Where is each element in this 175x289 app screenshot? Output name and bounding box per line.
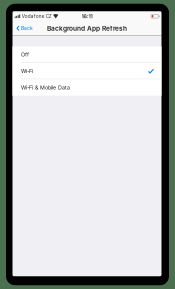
button[interactable]: Back [12, 22, 36, 34]
staticText: Back [21, 25, 33, 31]
staticText: Background App Refresh [47, 24, 127, 32]
button[interactable]: Wi-Fi & Mobile Data [12, 79, 161, 96]
staticText: Off [21, 51, 29, 58]
button[interactable]: Off [12, 46, 161, 63]
staticText: Wi-Fi & Mobile Data [21, 84, 70, 91]
staticText: Vodafone CZ [22, 13, 52, 19]
button[interactable]: Wi-Fi [12, 63, 161, 79]
staticText: Wi-Fi [21, 68, 33, 74]
staticText: 16:11 [81, 13, 92, 19]
